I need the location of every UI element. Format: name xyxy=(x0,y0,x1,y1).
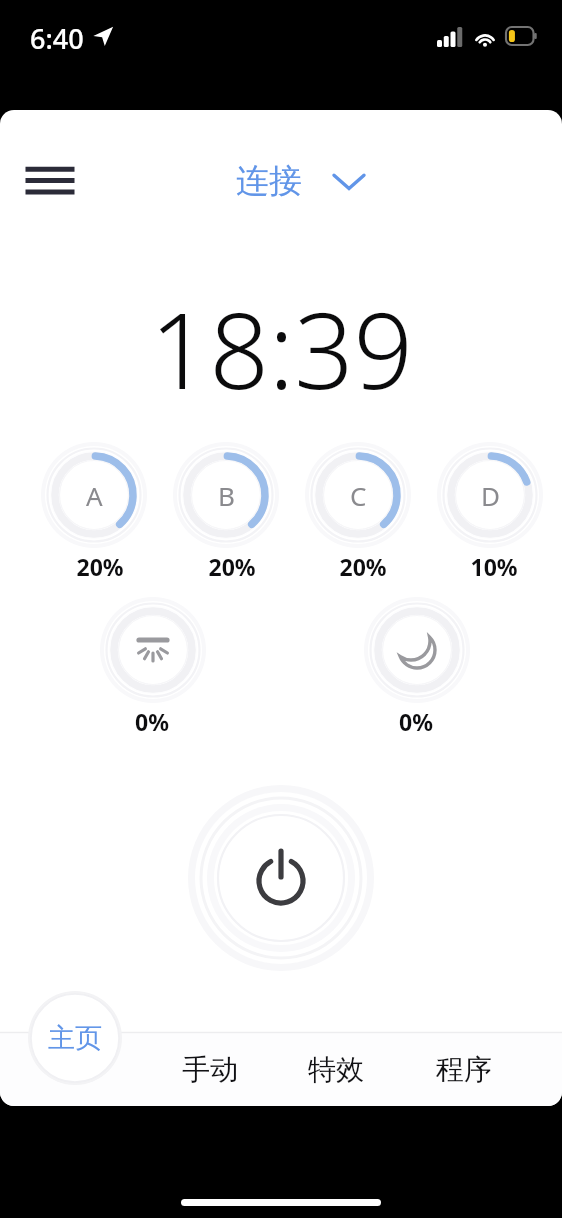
staticText: 20% xyxy=(208,551,256,582)
button[interactable]: Power xyxy=(186,783,376,973)
staticText: 6:40 xyxy=(30,20,84,57)
button[interactable]: B xyxy=(170,439,282,551)
staticText: D xyxy=(481,478,500,513)
button[interactable]: 连接 xyxy=(236,158,364,204)
button[interactable]: Moon channel xyxy=(361,594,473,706)
button[interactable]: A xyxy=(38,439,150,551)
button[interactable]: 特效 xyxy=(272,1032,400,1106)
staticText: C xyxy=(350,478,367,513)
button[interactable]: 主页 xyxy=(28,991,122,1085)
staticText: 0% xyxy=(135,706,169,737)
staticText: B xyxy=(218,478,235,513)
button[interactable]: 手动 xyxy=(148,1032,272,1106)
staticText: 手动 xyxy=(182,1052,238,1087)
staticText: 程序 xyxy=(436,1052,492,1087)
staticText: 10% xyxy=(470,551,518,582)
staticText: 18:39 xyxy=(150,278,413,420)
staticText: 特效 xyxy=(308,1052,364,1087)
button[interactable]: 程序 xyxy=(400,1032,528,1106)
staticText: 20% xyxy=(76,551,124,582)
staticText: 20% xyxy=(339,551,387,582)
staticText: A xyxy=(86,478,103,513)
button[interactable]: D xyxy=(434,439,546,551)
staticText: 连接 xyxy=(236,160,302,202)
staticText: 0% xyxy=(399,706,433,737)
button[interactable]: Menu xyxy=(22,158,78,202)
button[interactable]: White light channel xyxy=(97,594,209,706)
button[interactable]: C xyxy=(302,439,414,551)
staticText: 主页 xyxy=(48,1021,102,1055)
